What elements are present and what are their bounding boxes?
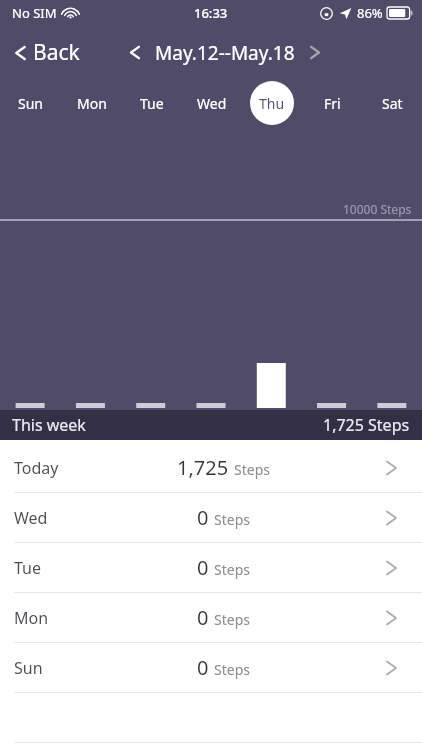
staticText: 0 <box>197 504 209 531</box>
staticText: Steps <box>214 660 250 679</box>
button[interactable]: Thu <box>242 78 302 128</box>
staticText: Back <box>33 38 80 67</box>
staticText: Sun <box>18 94 43 113</box>
button[interactable]: Today <box>0 443 422 493</box>
staticText: Sun <box>14 657 43 679</box>
button[interactable]: Next week <box>300 36 331 69</box>
staticText: 16:33 <box>194 4 228 22</box>
button[interactable]: Wed <box>0 493 422 543</box>
staticText: Wed <box>197 94 227 113</box>
staticText: Steps <box>214 560 250 579</box>
staticText: Fri <box>324 94 341 113</box>
button[interactable]: Sun <box>0 78 61 128</box>
button[interactable]: Mon <box>0 593 422 643</box>
button[interactable]: Mon <box>61 78 122 128</box>
staticText: May.12--May.18 <box>155 40 295 66</box>
staticText: Mon <box>14 607 49 629</box>
staticText: Mon <box>77 94 107 113</box>
staticText: Steps <box>234 460 270 479</box>
button[interactable]: Sun <box>0 643 422 693</box>
staticText: 0 <box>197 554 209 581</box>
button[interactable]: Back <box>0 30 92 75</box>
button[interactable]: Fri <box>302 78 362 128</box>
staticText: 0 <box>197 654 209 681</box>
staticText: 10000 Steps <box>343 201 412 217</box>
staticText: Sat <box>382 94 403 113</box>
staticText: This week <box>12 414 86 436</box>
staticText: Steps <box>214 510 250 529</box>
button[interactable]: Wed <box>182 78 242 128</box>
button[interactable]: Previous week <box>119 36 150 69</box>
staticText: Wed <box>14 507 48 529</box>
staticText: Steps <box>214 610 250 629</box>
button[interactable]: Sat <box>362 78 422 128</box>
staticText: 1,725 <box>177 454 229 481</box>
staticText: 1,725 Steps <box>323 414 410 436</box>
button[interactable]: Tue <box>122 78 182 128</box>
staticText: Today <box>14 457 59 479</box>
button[interactable]: Tue <box>0 543 422 593</box>
staticText: No SIM <box>12 4 57 22</box>
staticText: Tue <box>14 557 42 579</box>
staticText: Tue <box>140 94 164 113</box>
staticText: 86% <box>357 4 383 22</box>
staticText: 0 <box>197 604 209 631</box>
staticText: Thu <box>259 94 285 113</box>
